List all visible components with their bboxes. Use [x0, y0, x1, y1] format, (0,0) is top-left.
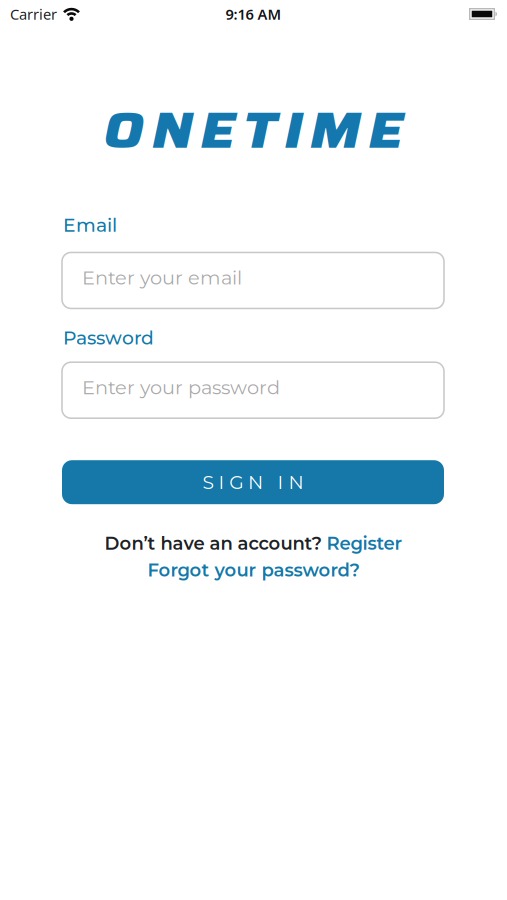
staticText: T: [243, 91, 277, 170]
staticText: Password: [63, 326, 154, 349]
staticText: I: [218, 471, 224, 494]
staticText: Carrier: [10, 4, 57, 24]
staticText: I: [278, 471, 284, 494]
staticText: M: [310, 91, 361, 170]
button[interactable]: Enter your password: [62, 362, 444, 418]
staticText: N: [288, 471, 303, 494]
button[interactable]: Forgot your password?: [147, 559, 359, 581]
staticText: O: [103, 91, 144, 170]
staticText: N: [248, 471, 263, 494]
staticText: E: [368, 91, 403, 170]
staticText: G: [229, 471, 243, 494]
staticText: Enter your email: [82, 266, 242, 289]
staticText: N: [152, 91, 193, 170]
staticText: Register: [326, 532, 402, 554]
staticText: E: [200, 91, 235, 170]
staticText: Enter your password: [82, 375, 280, 399]
staticText: Don’t have an account?: [104, 532, 326, 554]
staticText: S: [203, 471, 214, 494]
button[interactable]: S: [62, 460, 444, 504]
staticText: Email: [63, 214, 117, 236]
staticText: I: [284, 91, 302, 170]
staticText: 9:16 AM: [225, 4, 281, 24]
button[interactable]: Register: [326, 532, 402, 554]
button[interactable]: Enter your email: [62, 252, 444, 308]
staticText: Forgot your password?: [147, 559, 359, 581]
